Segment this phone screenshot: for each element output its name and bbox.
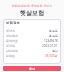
staticText: 홍길동 xyxy=(49,29,58,33)
staticText: 2023.01.01 xyxy=(42,44,58,48)
staticText: 보험료 xyxy=(6,54,15,58)
staticText: 납입방법 xyxy=(6,49,18,53)
staticText: 한화손해보험 계약조회 서비스 xyxy=(0,4,64,8)
staticText: 보험정보 xyxy=(6,21,20,25)
staticText: 홍길동 xyxy=(49,34,58,38)
staticText: 12345678 xyxy=(44,39,58,43)
staticText: 월납 xyxy=(52,49,58,53)
staticText: 피보험자 xyxy=(6,34,18,38)
staticText: 햇살보험 xyxy=(0,9,64,17)
staticText: 35,000원 xyxy=(45,54,58,58)
button[interactable]: 확인 xyxy=(3,66,61,71)
staticText: 증권번호 xyxy=(6,39,18,43)
staticText: 확인 xyxy=(29,67,35,71)
staticText: 계약일 xyxy=(6,44,15,48)
staticText: 계약자 xyxy=(6,29,15,33)
